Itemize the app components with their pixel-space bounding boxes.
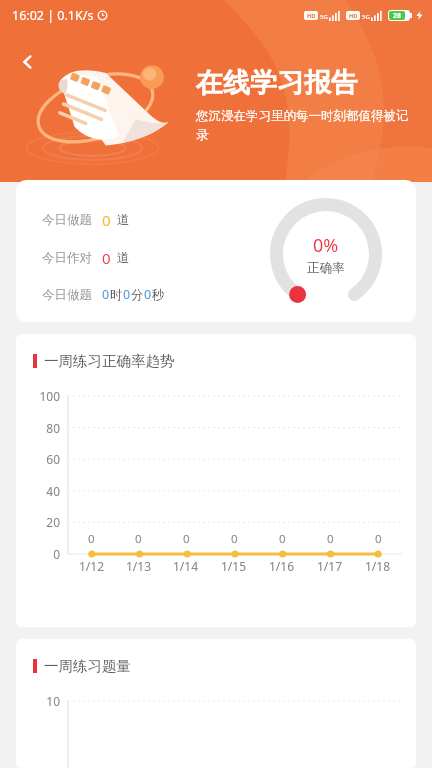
staticText: 16:02 | 0.1K/s — [12, 7, 94, 24]
staticText: 分 — [131, 287, 144, 303]
staticText: 0 — [144, 286, 152, 303]
staticText: 今日做题 — [42, 212, 92, 228]
staticText: 0% — [313, 233, 339, 258]
staticText: 0 — [183, 531, 190, 547]
staticText: 1/18 — [365, 558, 391, 574]
staticText: 0 — [123, 286, 131, 303]
staticText: 1/14 — [173, 558, 199, 574]
staticText: 0 — [102, 210, 111, 230]
staticText: 1/13 — [126, 558, 152, 574]
staticText: 1/12 — [79, 558, 105, 574]
staticText: 0 — [231, 531, 238, 547]
button[interactable]: 今日做题 — [16, 180, 416, 322]
button[interactable]: 一周练习正确率趋势 — [16, 334, 416, 627]
staticText: 5G — [362, 13, 370, 21]
staticText: 时 — [110, 287, 123, 303]
staticText: 道 — [117, 212, 130, 228]
staticText: 1/15 — [221, 558, 247, 574]
staticText: 道 — [117, 250, 130, 266]
staticText: 5G — [320, 13, 328, 21]
staticText: 正确率 — [307, 260, 345, 276]
staticText: 0 — [135, 531, 142, 547]
button[interactable]: Back — [8, 42, 48, 82]
staticText: 今日做题 — [42, 287, 92, 303]
staticText: 100 — [20, 388, 60, 404]
staticText: 20 — [20, 514, 60, 530]
staticText: 秒 — [152, 287, 165, 303]
staticText: 0 — [375, 531, 382, 547]
staticText: 1/16 — [269, 558, 295, 574]
staticText: 一周练习正确率趋势 — [44, 352, 175, 370]
staticText: 10 — [20, 693, 60, 709]
staticText: 在线学习报告 — [196, 66, 358, 100]
staticText: 您沉浸在学习里的每一时刻都值得被记录 — [196, 108, 414, 143]
staticText: 40 — [20, 483, 60, 499]
staticText: 0 — [88, 531, 95, 547]
staticText: 28 — [393, 11, 402, 20]
staticText: 0 — [279, 531, 286, 547]
staticText: 今日作对 — [42, 250, 92, 266]
staticText: 0 — [20, 546, 60, 562]
button[interactable]: 一周练习题量 — [16, 639, 416, 768]
staticText: 0 — [102, 286, 110, 303]
staticText: 1/17 — [317, 558, 343, 574]
staticText: 一周练习题量 — [44, 657, 131, 675]
staticText: HD — [307, 12, 316, 19]
staticText: 0 — [102, 248, 111, 268]
staticText: 80 — [20, 420, 60, 436]
staticText: 0 — [327, 531, 334, 547]
staticText: 60 — [20, 451, 60, 467]
staticText: HD — [349, 12, 358, 19]
